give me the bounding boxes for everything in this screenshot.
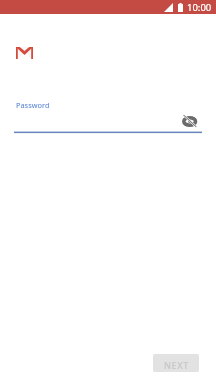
staticText: Password <box>16 100 50 110</box>
button[interactable]: NEXT <box>153 354 199 372</box>
staticText: NEXT <box>164 359 189 371</box>
button[interactable]: Password <box>14 96 202 134</box>
staticText: 10:00 <box>187 1 212 14</box>
button[interactable]: Show password <box>182 115 197 127</box>
